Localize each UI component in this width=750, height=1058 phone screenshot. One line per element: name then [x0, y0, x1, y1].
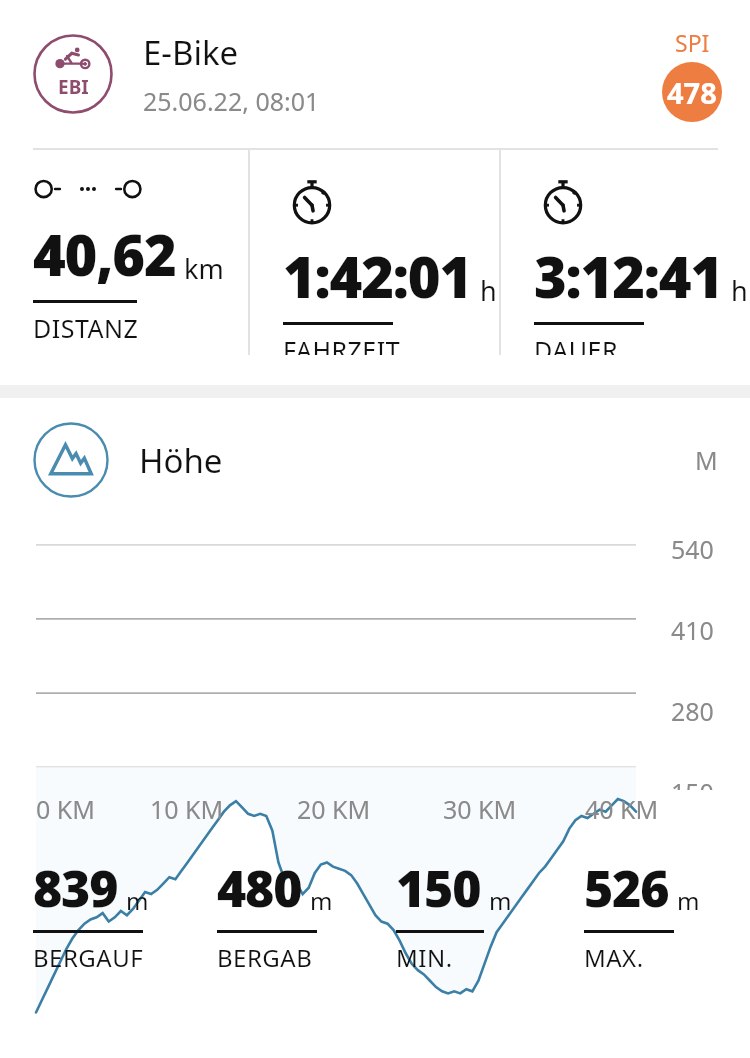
staticText: SPI — [675, 27, 710, 58]
staticText: 40,62 — [33, 216, 176, 292]
staticText: m — [677, 884, 700, 917]
staticText: m — [310, 884, 333, 917]
staticText: DISTANZ — [33, 311, 139, 345]
staticText: BERGAB — [217, 941, 313, 974]
staticText: 410 — [671, 613, 714, 647]
button[interactable]: Distance — [0, 150, 248, 355]
staticText: h — [731, 272, 748, 309]
staticText: 280 — [671, 694, 714, 728]
other: Duration — [534, 174, 592, 226]
button[interactable]: 839 — [0, 854, 187, 974]
button[interactable]: EBI — [0, 0, 750, 148]
staticText: 480 — [217, 854, 302, 922]
other: Distance — [33, 174, 143, 204]
staticText: Höhe — [139, 438, 695, 483]
staticText: 3:12:41 — [534, 238, 723, 314]
staticText: 540 — [671, 532, 714, 566]
staticText: BERGAUF — [33, 941, 144, 974]
staticText: m — [489, 884, 512, 917]
staticText: 20 KM — [297, 792, 371, 826]
button[interactable]: Duration — [501, 150, 750, 355]
button[interactable]: 480 — [187, 854, 374, 974]
staticText: 1:42:01 — [283, 238, 472, 314]
staticText: km — [184, 250, 224, 287]
staticText: m — [126, 884, 149, 917]
staticText: MAX. — [584, 941, 644, 974]
button[interactable]: 526 — [562, 854, 750, 974]
staticText: 478 — [667, 73, 717, 112]
button[interactable]: Höhe — [0, 398, 750, 522]
other: Moving time — [283, 174, 341, 226]
staticText: h — [480, 272, 497, 309]
staticText: 25.06.22, 08:01 — [143, 84, 320, 118]
staticText: 40 KM — [585, 792, 659, 826]
staticText: 150 — [671, 775, 714, 790]
staticText: FAHRZEIT — [283, 333, 401, 355]
staticText: M — [695, 443, 718, 477]
button[interactable]: 150 — [374, 854, 562, 974]
staticText: 0 KM — [36, 792, 95, 826]
staticText: 526 — [584, 854, 669, 922]
staticText: 30 KM — [443, 792, 517, 826]
staticText: 150 — [396, 854, 481, 922]
staticText: 839 — [33, 854, 118, 922]
staticText: MIN. — [396, 941, 453, 974]
button[interactable]: SPI score 478 — [662, 27, 722, 122]
staticText: EBI — [58, 74, 89, 100]
staticText: E-Bike — [143, 30, 239, 75]
staticText: DAUER — [534, 333, 618, 355]
staticText: 10 KM — [150, 792, 224, 826]
button[interactable]: Moving time — [250, 150, 499, 355]
